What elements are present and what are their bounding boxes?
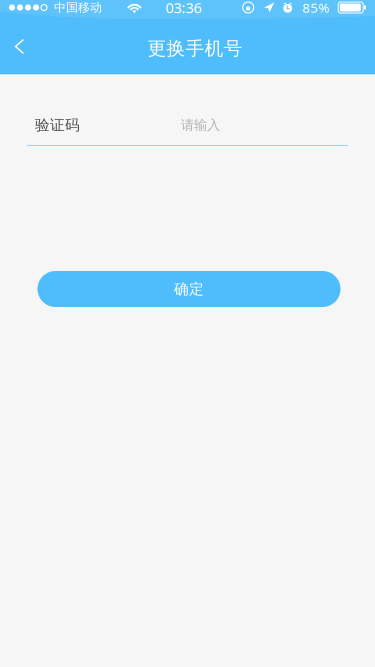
staticText: 中国移动	[54, 0, 102, 15]
staticText: 85%	[302, 0, 329, 16]
button[interactable]: Back	[0, 24, 39, 68]
staticText: 验证码	[35, 116, 80, 134]
staticText: 更换手机号	[147, 37, 242, 60]
button[interactable]: 确定	[34, 271, 340, 307]
staticText: 请输入	[181, 117, 220, 133]
staticText: 确定	[174, 280, 204, 298]
staticText: 03:36	[166, 0, 202, 17]
